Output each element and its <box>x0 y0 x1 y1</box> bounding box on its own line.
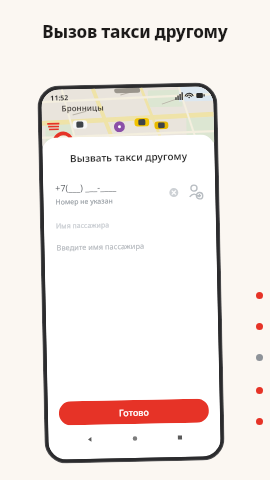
button[interactable]: Выбрать контакт <box>187 183 203 200</box>
staticText: Номер не указан <box>55 196 114 208</box>
staticText: Готово <box>119 406 149 418</box>
staticText: +7(___) ___-____ <box>55 180 116 194</box>
button[interactable]: Готово <box>59 398 209 425</box>
button[interactable]: Последние приложения <box>175 433 185 442</box>
button[interactable]: Назад <box>85 435 95 444</box>
staticText: Бронницы <box>61 101 105 113</box>
button[interactable]: Меню <box>46 119 60 134</box>
staticText: 11:52 <box>50 93 68 104</box>
staticText: Вызвать такси другому <box>42 148 215 166</box>
button[interactable]: Очистить <box>169 188 178 197</box>
staticText: Имя пассажира <box>56 220 110 231</box>
staticText: Вызов такси другому <box>0 20 270 43</box>
button[interactable]: Введите имя пассажира <box>56 239 204 253</box>
button[interactable]: Домой <box>130 434 140 443</box>
staticText: Введите имя пассажира <box>56 241 144 252</box>
